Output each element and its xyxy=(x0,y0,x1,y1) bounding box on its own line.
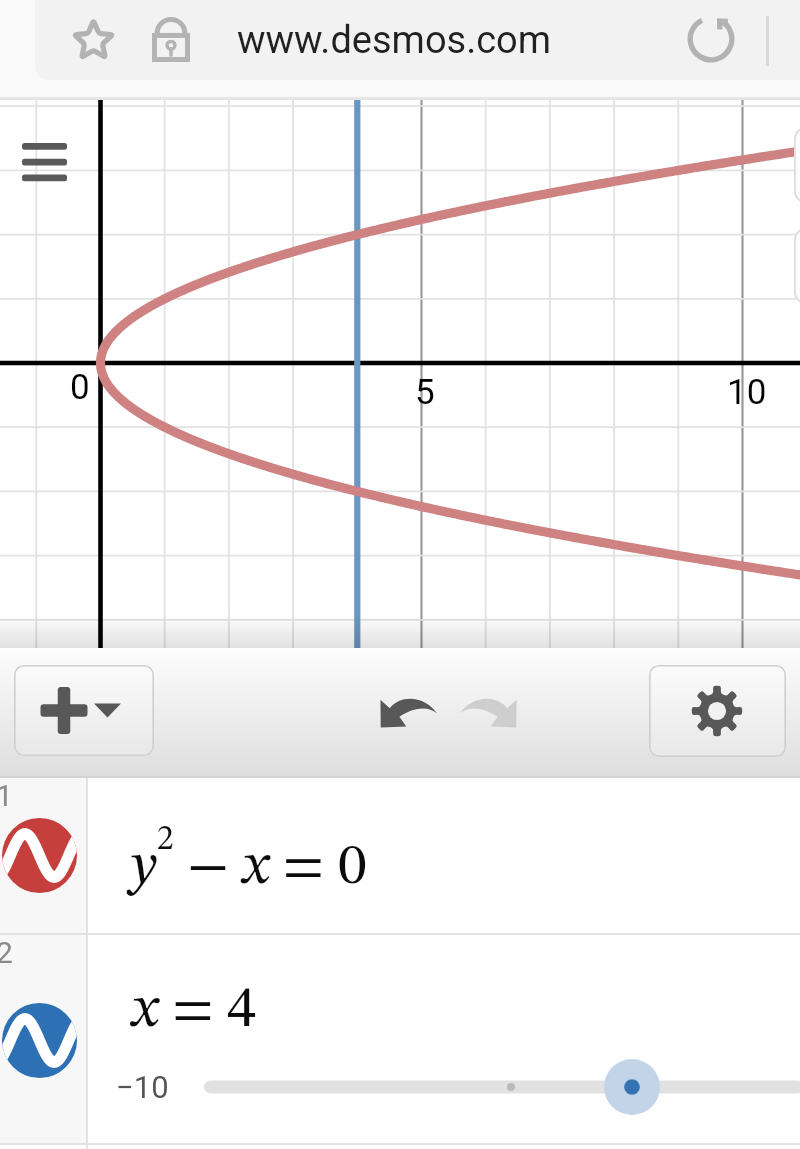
button[interactable]: 2 xyxy=(0,935,86,1145)
button[interactable]: y2 − x = 0 xyxy=(88,778,800,933)
staticText: 5 xyxy=(415,372,435,413)
staticText: 1 xyxy=(0,778,13,813)
staticText: −10 xyxy=(116,1069,169,1105)
button[interactable]: Zoom in xyxy=(794,127,800,203)
staticText: x = 4 xyxy=(132,982,257,1040)
button[interactable]: Reload page xyxy=(687,15,735,63)
button[interactable]: x = 4 xyxy=(88,935,800,1145)
staticText: www.desmos.com xyxy=(237,18,552,63)
button[interactable]: 1 xyxy=(0,778,86,933)
staticText: 0 xyxy=(70,367,90,408)
button[interactable]: Zoom out xyxy=(794,228,800,304)
staticText: y2 − x = 0 xyxy=(131,823,367,896)
staticText: 10 xyxy=(727,372,767,413)
staticText: 2 xyxy=(0,935,13,970)
button[interactable]: Add expression xyxy=(14,665,154,756)
button[interactable]: Settings xyxy=(649,665,786,757)
button[interactable]: Site security xyxy=(152,17,190,62)
button[interactable]: Menu xyxy=(22,143,67,182)
button[interactable]: Undo xyxy=(370,686,446,738)
button[interactable]: Address bar xyxy=(35,0,800,80)
button[interactable]: Redo xyxy=(451,686,527,738)
button[interactable]: Bookmark xyxy=(71,17,116,62)
button[interactable]: Slider for x xyxy=(204,1045,800,1109)
